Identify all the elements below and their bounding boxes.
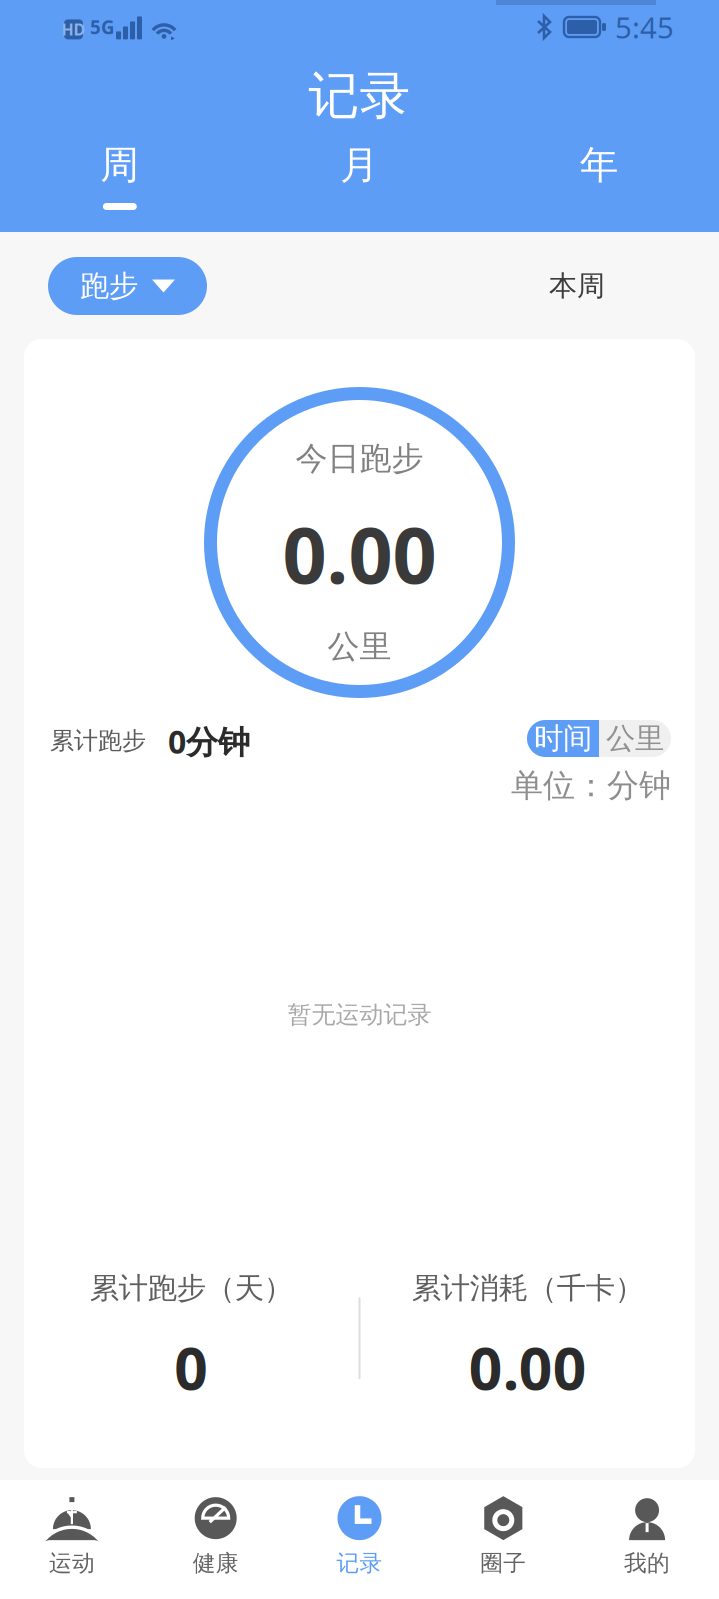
staticText: 年 <box>580 141 619 189</box>
staticText: 0分钟 <box>168 720 250 762</box>
staticText: 公里 <box>606 720 664 756</box>
button[interactable]: 公里 <box>599 720 671 757</box>
staticText: 跑步 <box>80 268 138 304</box>
button[interactable]: 记录 <box>288 1496 431 1577</box>
staticText: 记录 <box>308 65 410 127</box>
staticText: 运动 <box>49 1549 95 1577</box>
staticText: HD <box>61 19 85 40</box>
staticText: 健康 <box>193 1549 239 1577</box>
staticText: 单位：分钟 <box>511 766 671 805</box>
button[interactable]: 我的 <box>575 1496 719 1577</box>
staticText: 5G <box>90 15 115 39</box>
staticText: 0.00 <box>469 1328 587 1406</box>
staticText: 圈子 <box>480 1549 526 1577</box>
staticText: 0.00 <box>282 502 436 605</box>
staticText: 周 <box>100 141 139 189</box>
staticText: 0 <box>174 1328 208 1406</box>
button[interactable]: 圈子 <box>431 1496 575 1577</box>
staticText: 今日跑步 <box>295 439 423 478</box>
staticText: 月 <box>340 141 379 189</box>
button[interactable]: 周 <box>0 147 240 210</box>
staticText: 时间 <box>534 720 592 756</box>
staticText: 本周 <box>549 269 605 303</box>
staticText: 记录 <box>336 1549 382 1577</box>
staticText: 累计消耗（千卡） <box>412 1270 644 1306</box>
button[interactable]: 健康 <box>144 1496 288 1577</box>
staticText: 5:45 <box>615 7 674 46</box>
staticText: 我的 <box>624 1549 670 1577</box>
button[interactable]: 时间 <box>527 720 599 757</box>
button[interactable]: 年 <box>479 147 719 210</box>
button[interactable]: 跑步 <box>48 257 207 315</box>
staticText: 累计跑步 <box>50 726 146 755</box>
staticText: 公里 <box>327 627 391 666</box>
button[interactable]: 月 <box>240 147 479 210</box>
staticText: 暂无运动记录 <box>287 1000 431 1029</box>
button[interactable]: 运动 <box>0 1496 144 1577</box>
staticText: 累计跑步（天） <box>90 1270 293 1306</box>
